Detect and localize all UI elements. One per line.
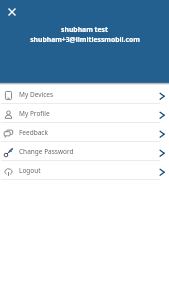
- staticText: My Devices: [19, 90, 54, 99]
- button[interactable]: My Devices: [0, 85, 169, 103]
- staticText: Logout: [19, 166, 41, 175]
- button[interactable]: My Profile: [0, 104, 169, 122]
- staticText: Change Password: [19, 147, 74, 156]
- button[interactable]: Feedback: [0, 123, 169, 141]
- button[interactable]: Close: [3, 3, 21, 21]
- button[interactable]: Change Password: [0, 142, 169, 160]
- button[interactable]: Logout: [0, 161, 169, 179]
- staticText: My Profile: [19, 109, 50, 118]
- staticText: Feedback: [19, 128, 48, 137]
- staticText: shubham test: [61, 25, 108, 34]
- staticText: shubham+3@limitlessmobil.com: [30, 35, 140, 44]
